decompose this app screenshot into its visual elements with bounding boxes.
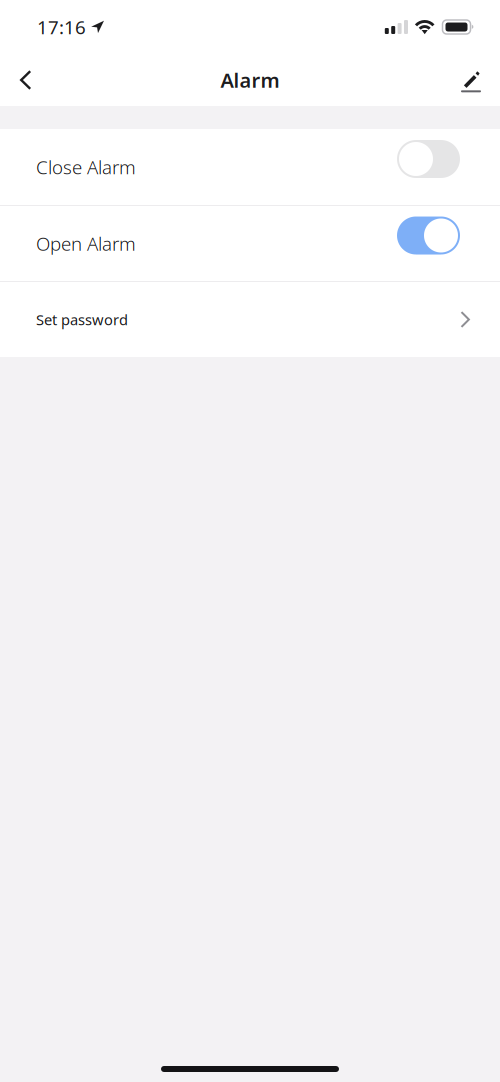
button[interactable]: Set password <box>0 282 500 357</box>
button[interactable]: Back <box>0 58 47 102</box>
staticText: Set password <box>36 310 128 329</box>
staticText: Close Alarm <box>36 155 136 179</box>
button[interactable]: Open Alarm <box>0 206 500 281</box>
staticText: Open Alarm <box>36 231 136 256</box>
button[interactable]: Edit <box>445 58 500 102</box>
staticText: Alarm <box>220 67 279 93</box>
button[interactable]: Close Alarm <box>0 129 500 205</box>
staticText: 17:16 <box>37 15 86 39</box>
